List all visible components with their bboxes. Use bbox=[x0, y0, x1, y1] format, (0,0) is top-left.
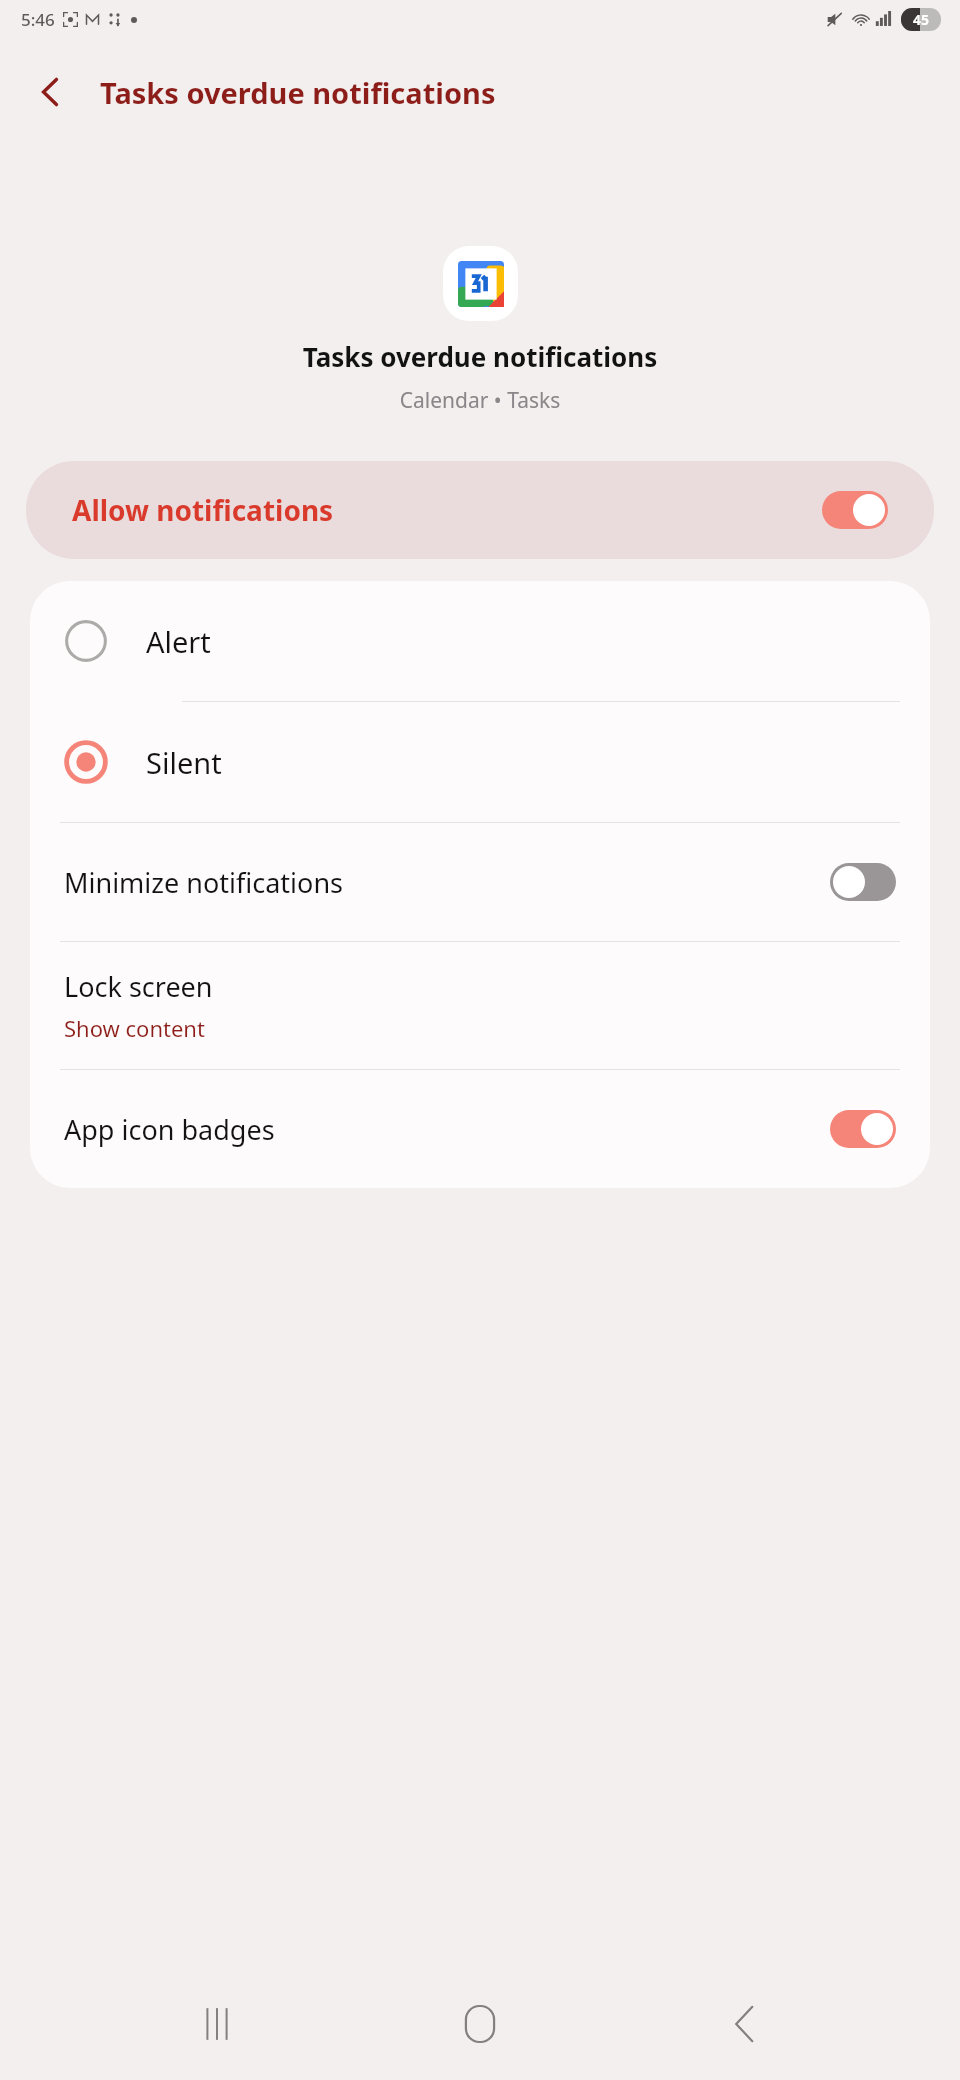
button[interactable]: Back bbox=[12, 53, 90, 131]
button[interactable]: Allow notifications bbox=[26, 461, 934, 559]
staticText: Show content bbox=[64, 1013, 205, 1043]
button[interactable]: Home bbox=[433, 1977, 527, 2071]
button[interactable]: Alert bbox=[30, 581, 930, 701]
button[interactable]: Recent apps bbox=[170, 1977, 264, 2071]
staticText: 45 bbox=[901, 10, 941, 29]
button[interactable]: Off bbox=[830, 863, 896, 901]
staticText: Minimize notifications bbox=[64, 864, 830, 901]
button[interactable]: Silent bbox=[30, 702, 930, 822]
button[interactable]: Minimize notifications bbox=[30, 823, 930, 941]
staticText: App icon badges bbox=[64, 1111, 830, 1148]
staticText: Lock screen bbox=[64, 968, 213, 1005]
staticText: Alert bbox=[146, 622, 211, 661]
button[interactable]: Back bbox=[697, 1977, 791, 2071]
button[interactable]: Lock screen bbox=[30, 942, 930, 1069]
button[interactable]: On bbox=[830, 1110, 896, 1148]
button[interactable]: On bbox=[822, 491, 888, 529]
staticText: Calendar • Tasks bbox=[0, 386, 960, 415]
staticText: 5:46 bbox=[21, 8, 55, 31]
staticText: Tasks overdue notifications bbox=[100, 73, 496, 112]
staticText: Tasks overdue notifications bbox=[0, 339, 960, 374]
staticText: Silent bbox=[146, 743, 222, 782]
button[interactable]: App icon badges bbox=[30, 1070, 930, 1188]
staticText: Allow notifications bbox=[72, 491, 822, 529]
